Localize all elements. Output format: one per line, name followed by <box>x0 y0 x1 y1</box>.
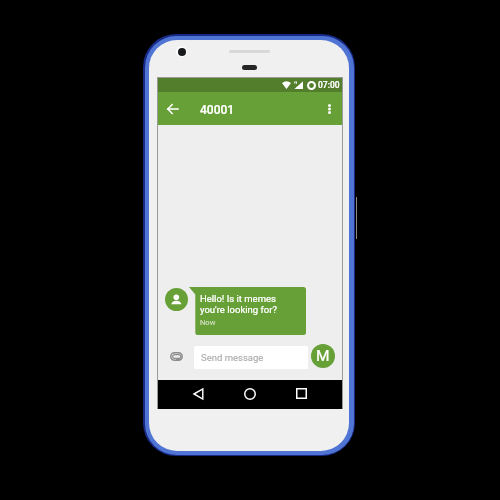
staticText: Now <box>200 318 216 327</box>
staticText: 40001 <box>200 103 235 117</box>
button[interactable]: Recent apps <box>290 380 312 409</box>
button[interactable]: Hello! Is it memes you're looking for? <box>189 287 306 335</box>
button[interactable]: Back <box>187 380 209 409</box>
button[interactable]: Home <box>239 380 261 409</box>
button[interactable]: Send message <box>194 346 308 369</box>
button[interactable]: Back <box>161 92 183 125</box>
staticText: M <box>316 347 330 365</box>
button[interactable]: Contact avatar <box>165 288 188 311</box>
button[interactable]: Attach file <box>167 347 185 366</box>
button[interactable]: More options <box>319 92 341 125</box>
button[interactable]: Send <box>311 344 335 368</box>
staticText: 07:00 <box>318 80 340 90</box>
staticText: Hello! Is it memes you're looking for? <box>200 293 277 315</box>
staticText: Send message <box>201 352 264 363</box>
